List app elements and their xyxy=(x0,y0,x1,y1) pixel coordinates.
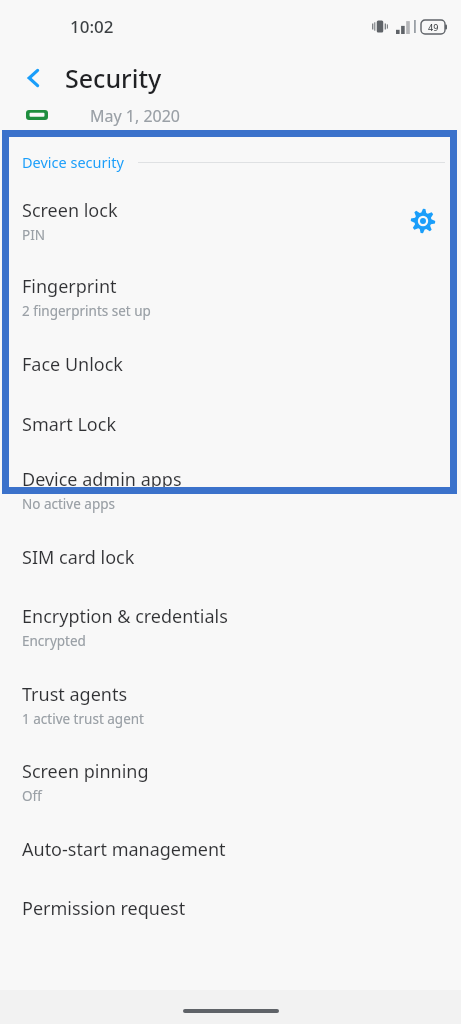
staticText: Trust agents xyxy=(22,682,128,707)
button[interactable]: Smart Lock xyxy=(0,412,461,437)
staticText: Encrypted xyxy=(22,632,86,650)
button[interactable]: Screen lock settings xyxy=(403,201,443,241)
button[interactable]: Back xyxy=(14,58,54,98)
button[interactable]: Auto-start management xyxy=(0,837,461,862)
staticText: SIM card lock xyxy=(22,545,135,570)
staticText: Auto-start management xyxy=(22,837,226,862)
button[interactable]: Encryption & credentials xyxy=(0,604,461,650)
staticText: 1 active trust agent xyxy=(22,710,144,728)
button[interactable]: Face Unlock xyxy=(0,352,461,377)
button[interactable]: Device admin apps xyxy=(0,467,461,513)
staticText: Permission request xyxy=(22,896,186,921)
staticText: Face Unlock xyxy=(22,352,123,377)
button[interactable]: Fingerprint xyxy=(0,274,461,320)
button[interactable]: SIM card lock xyxy=(0,545,461,570)
staticText: 10:02 xyxy=(70,15,114,38)
button[interactable]: Trust agents xyxy=(0,682,461,728)
staticText: Screen pinning xyxy=(22,759,149,784)
button[interactable]: Permission request xyxy=(0,896,461,921)
button[interactable]: Screen lock xyxy=(0,198,461,244)
staticText: No active apps xyxy=(22,495,115,513)
staticText: Device security xyxy=(22,152,124,172)
staticText: May 1, 2020 xyxy=(90,105,181,127)
staticText: PIN xyxy=(22,226,46,244)
staticText: Fingerprint xyxy=(22,274,117,299)
staticText: Encryption & credentials xyxy=(22,604,228,629)
staticText: Security xyxy=(65,61,162,95)
staticText: Smart Lock xyxy=(22,412,116,437)
button[interactable]: Screen pinning xyxy=(0,759,461,805)
staticText: Screen lock xyxy=(22,198,118,223)
staticText: 49 xyxy=(428,21,439,33)
staticText: Device admin apps xyxy=(22,467,182,492)
staticText: Off xyxy=(22,787,42,805)
staticText: 2 fingerprints set up xyxy=(22,302,151,320)
